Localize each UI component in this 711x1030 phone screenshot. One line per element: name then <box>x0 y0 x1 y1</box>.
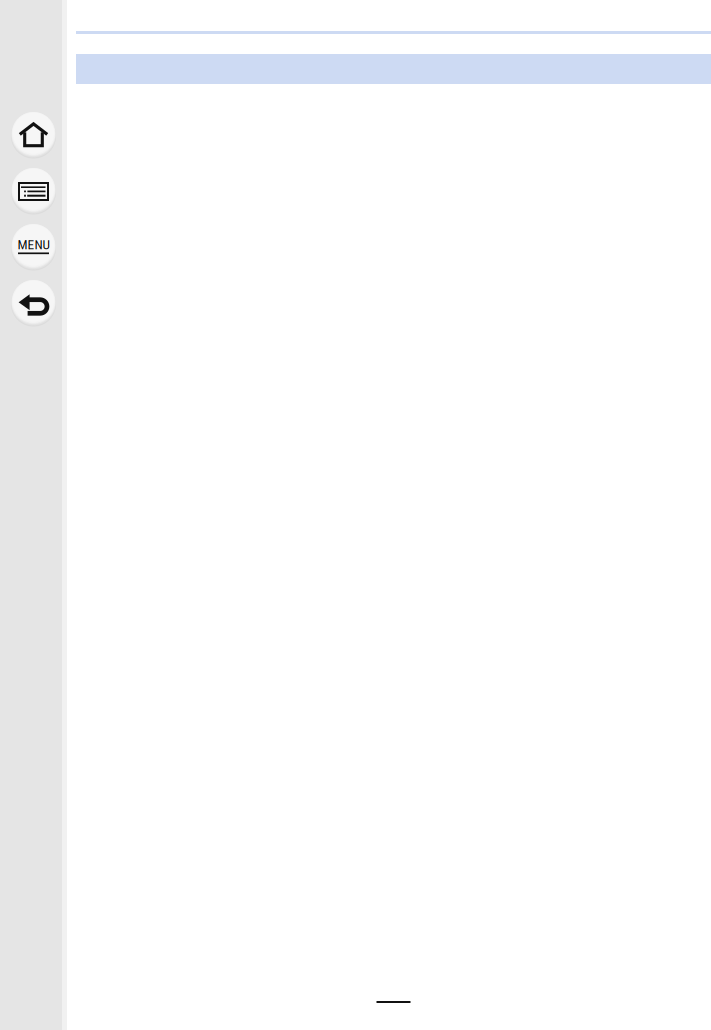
button[interactable]: Contents <box>11 167 56 212</box>
button[interactable]: Menu <box>11 223 56 268</box>
staticText: MENU <box>17 237 49 252</box>
button[interactable]: Back <box>11 279 56 324</box>
button[interactable]: Home <box>11 111 56 156</box>
